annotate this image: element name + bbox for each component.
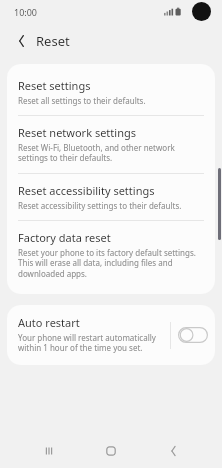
button[interactable]: Reset settings [7, 69, 215, 115]
staticText: Reset Wi-Fi, Bluetooth, and other networ… [18, 142, 203, 164]
button[interactable]: Auto restart toggle [171, 315, 215, 355]
staticText: Reset accessibility settings to their de… [18, 200, 182, 211]
staticText: Reset settings [18, 78, 91, 93]
button[interactable]: Home [99, 439, 123, 463]
staticText: Reset [36, 32, 70, 50]
staticText: Reset network settings [18, 125, 136, 140]
staticText: Factory data reset [18, 230, 111, 245]
button[interactable]: Auto restart [7, 305, 215, 365]
button[interactable]: Back [9, 29, 33, 53]
staticText: Reset accessibility settings [18, 183, 155, 198]
staticText: Auto restart [18, 315, 80, 330]
staticText: Reset your phone to its factory default … [18, 247, 203, 280]
staticText: Your phone will restart automatically wi… [18, 332, 164, 354]
staticText: Reset all settings to their defaults. [18, 95, 146, 106]
button[interactable]: Reset network settings [7, 116, 215, 173]
button[interactable]: Factory data reset [7, 221, 215, 289]
staticText: 10:00 [14, 6, 38, 18]
button[interactable]: Reset accessibility settings [7, 174, 215, 220]
button[interactable]: Recent apps [37, 439, 61, 463]
button[interactable]: Back [161, 439, 185, 463]
